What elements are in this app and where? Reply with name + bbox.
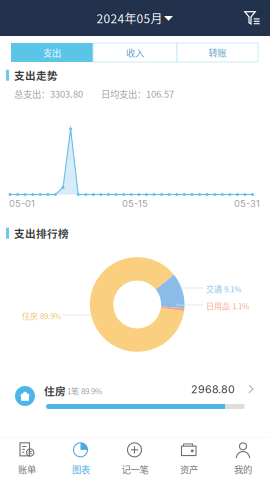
button[interactable]: 资产 [162,438,216,480]
button[interactable]: 账单 [0,438,54,480]
button[interactable]: 图表 [54,438,108,480]
staticText: 转账 [208,46,226,59]
staticText: 总支出：3303.80 [14,87,83,100]
staticText: 住房 89.9% [22,310,61,322]
button[interactable]: 记一笔 [108,438,162,480]
button[interactable]: 住房 [0,383,270,415]
staticText: 住房 [44,383,66,398]
staticText: 支出 [43,46,61,59]
button[interactable]: 我的 [216,438,270,480]
staticText: 05-01 [9,198,35,209]
staticText: 05-31 [234,198,260,209]
staticText: 账单 [18,462,36,476]
staticText: 日均支出：106.57 [101,87,174,100]
button[interactable]: 收入 [93,43,177,62]
staticText: 2024年05月 [96,9,162,27]
staticText: 收入 [126,46,144,59]
staticText: 图表 [72,462,90,476]
button[interactable]: 2024年05月 [88,4,181,32]
staticText: 2968.80 [191,383,235,396]
staticText: 我的 [234,462,252,476]
button[interactable]: 支出 [11,43,93,62]
staticText: 1笔 89.9% [67,385,102,397]
button[interactable]: 筛选 [234,1,270,34]
staticText: 资产 [180,462,198,476]
staticText: 05-15 [122,198,148,209]
staticText: 支出走势 [14,67,58,83]
button[interactable]: 转账 [177,43,258,62]
staticText: 交通 9.1% [206,283,241,295]
staticText: 日用品 1.1% [206,300,249,312]
staticText: 支出排行榜 [14,225,69,241]
staticText: 记一笔 [121,462,148,476]
